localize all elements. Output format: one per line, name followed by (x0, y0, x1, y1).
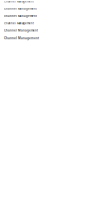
staticText: Channel Management (4, 29, 38, 32)
staticText: Channel Management (4, 22, 34, 25)
staticText: Channel Management (4, 7, 37, 10)
staticText: Channel Management (4, 0, 34, 3)
staticText: Channel Management (4, 14, 37, 18)
staticText: Channel Management (4, 36, 39, 40)
